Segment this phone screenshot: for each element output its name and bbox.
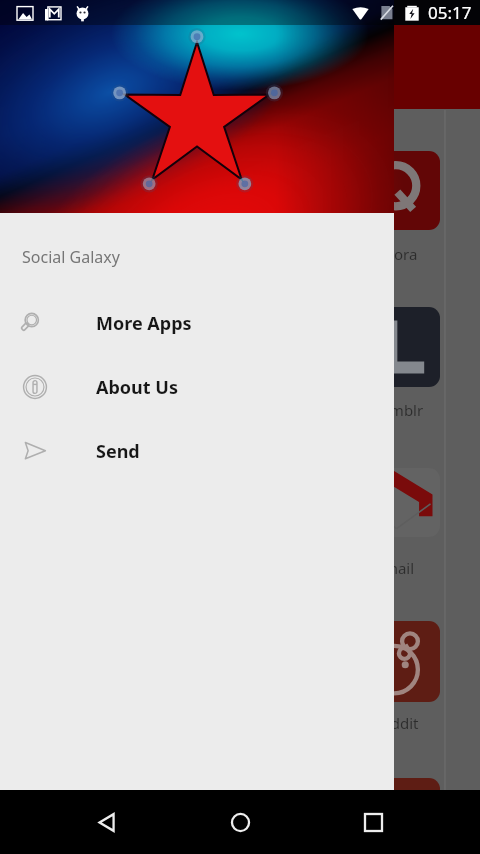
button[interactable]: About Us	[0, 355, 394, 419]
staticText: Gmail	[373, 558, 415, 578]
staticText: More Apps	[96, 311, 192, 336]
staticText: About Us	[96, 375, 178, 400]
staticText: Quora	[373, 244, 418, 264]
button[interactable]: Home	[214, 796, 266, 848]
button[interactable]: Back	[81, 796, 133, 848]
staticText: Social Galaxy	[22, 246, 120, 268]
button[interactable]: Send	[0, 419, 394, 483]
button[interactable]: More Apps	[0, 291, 394, 355]
staticText: Tumblr	[373, 400, 424, 420]
staticText: Reddit	[373, 713, 419, 733]
button[interactable]: Recent apps	[347, 796, 399, 848]
staticText: 05:17	[428, 1, 472, 24]
staticText: Send	[96, 439, 140, 464]
